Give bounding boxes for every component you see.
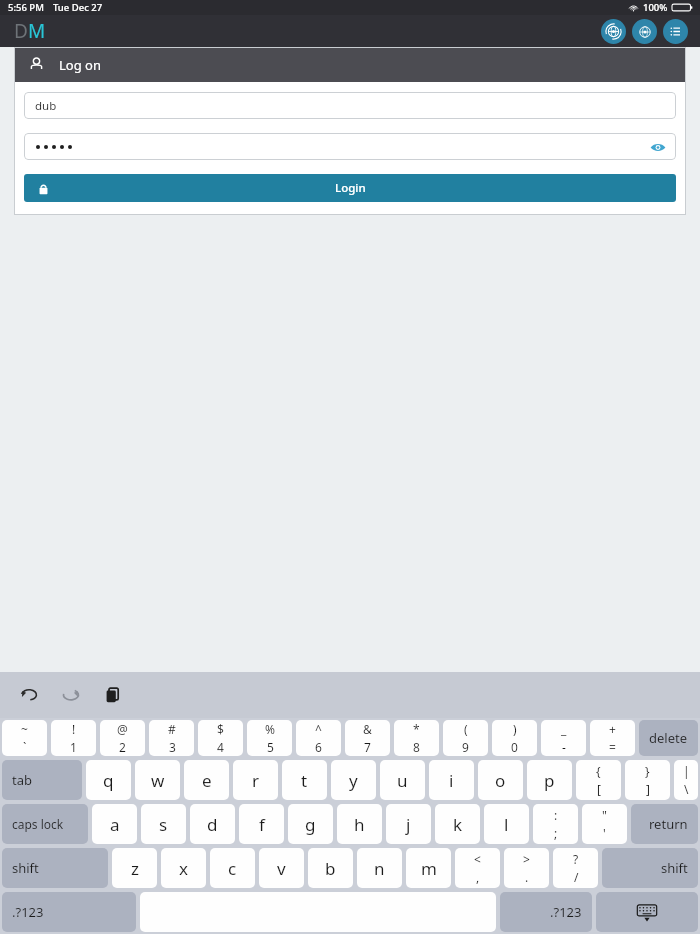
button[interactable]: Sync	[601, 19, 626, 44]
button[interactable]: +	[590, 720, 635, 756]
button[interactable]: r	[233, 760, 278, 800]
button[interactable]: m	[406, 848, 451, 888]
button[interactable]: $	[198, 720, 243, 756]
button[interactable]: Menu	[663, 19, 688, 44]
staticText: ~	[21, 721, 28, 737]
button[interactable]: &	[345, 720, 390, 756]
staticText: }	[645, 763, 650, 779]
button[interactable]: .?123	[500, 892, 592, 932]
button[interactable]: "	[582, 804, 627, 844]
staticText: !	[72, 721, 76, 737]
button[interactable]: c	[210, 848, 255, 888]
button[interactable]: Login	[24, 174, 676, 202]
button[interactable]: Network	[632, 19, 657, 44]
button[interactable]: h	[337, 804, 382, 844]
staticText: =	[609, 739, 616, 755]
button[interactable]: o	[478, 760, 523, 800]
button[interactable]: shift	[602, 848, 698, 888]
button[interactable]: {	[576, 760, 621, 800]
staticText: c	[228, 857, 237, 880]
button[interactable]: @	[100, 720, 145, 756]
staticText: z	[131, 857, 139, 880]
staticText: 4	[217, 739, 224, 755]
button[interactable]: shift	[2, 848, 108, 888]
button[interactable]: dub	[24, 92, 676, 119]
button[interactable]: t	[282, 760, 327, 800]
staticText: -	[562, 739, 566, 755]
button[interactable]: #	[149, 720, 194, 756]
staticText: 7	[364, 739, 371, 755]
button[interactable]: u	[380, 760, 425, 800]
button[interactable]: Redo	[54, 678, 88, 712]
staticText: )	[513, 721, 517, 737]
button[interactable]: d	[190, 804, 235, 844]
button[interactable]: p	[527, 760, 572, 800]
button[interactable]: caps lock	[2, 804, 88, 844]
staticText: ,	[476, 869, 480, 885]
button[interactable]: ?	[553, 848, 598, 888]
button[interactable]: i	[429, 760, 474, 800]
button[interactable]: a	[92, 804, 137, 844]
staticText: 8	[413, 739, 420, 755]
button[interactable]: k	[435, 804, 480, 844]
button[interactable]: y	[331, 760, 376, 800]
staticText: ]	[646, 781, 650, 797]
button[interactable]: D	[14, 18, 46, 44]
button[interactable]: j	[386, 804, 431, 844]
button[interactable]: s	[141, 804, 186, 844]
button[interactable]: )	[492, 720, 537, 756]
staticText: i	[449, 769, 454, 792]
button[interactable]: <	[455, 848, 500, 888]
button[interactable]: ^	[296, 720, 341, 756]
button[interactable]: >	[504, 848, 549, 888]
button[interactable]: (	[443, 720, 488, 756]
button[interactable]: q	[86, 760, 131, 800]
button[interactable]: Undo	[12, 678, 46, 712]
staticText: &	[363, 721, 372, 737]
button[interactable]: :	[533, 804, 578, 844]
staticText: '	[603, 825, 606, 841]
button[interactable]: Log on	[28, 47, 686, 82]
button[interactable]: w	[135, 760, 180, 800]
button[interactable]: |	[674, 760, 698, 800]
staticText: .?123	[12, 903, 44, 921]
button[interactable]: *	[394, 720, 439, 756]
staticText: "	[602, 807, 607, 823]
staticText: 3	[169, 739, 176, 755]
staticText: >	[523, 851, 530, 867]
staticText: :	[554, 807, 558, 823]
button[interactable]	[596, 892, 698, 932]
staticText: k	[453, 813, 463, 836]
button[interactable]: delete	[639, 720, 698, 756]
button[interactable]: g	[288, 804, 333, 844]
button[interactable]: z	[112, 848, 157, 888]
staticText: m	[421, 857, 437, 880]
button[interactable]: %	[247, 720, 292, 756]
button[interactable]: l	[484, 804, 529, 844]
staticText: @	[117, 721, 128, 737]
button[interactable]: Show password	[24, 133, 676, 160]
button[interactable]: b	[308, 848, 353, 888]
staticText: 6	[315, 739, 322, 755]
button[interactable]: }	[625, 760, 670, 800]
staticText: x	[179, 857, 188, 880]
button[interactable]: f	[239, 804, 284, 844]
button[interactable]: ~	[2, 720, 47, 756]
staticText: .?123	[550, 903, 582, 921]
staticText: $	[217, 721, 224, 737]
button[interactable]: _	[541, 720, 586, 756]
button[interactable]: Paste	[96, 678, 130, 712]
button[interactable]: Show password	[648, 137, 668, 157]
staticText: d	[207, 813, 218, 836]
button[interactable]: e	[184, 760, 229, 800]
button[interactable]: .?123	[2, 892, 136, 932]
button[interactable]: n	[357, 848, 402, 888]
button[interactable]: x	[161, 848, 206, 888]
button[interactable]: return	[631, 804, 698, 844]
button[interactable]: tab	[2, 760, 82, 800]
button[interactable]: !	[51, 720, 96, 756]
button[interactable]: v	[259, 848, 304, 888]
staticText: ^	[315, 721, 322, 737]
staticText: r	[252, 769, 260, 792]
